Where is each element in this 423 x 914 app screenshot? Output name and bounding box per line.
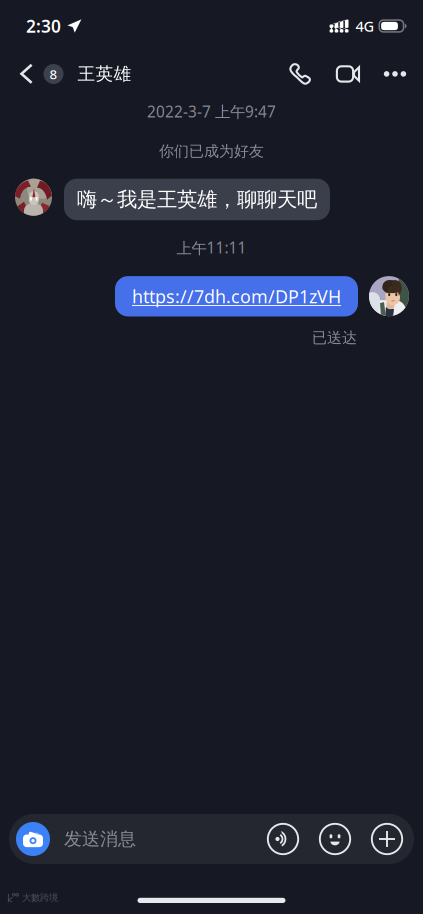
staticText: 王英雄: [77, 63, 131, 85]
staticText: 你们已成为好友: [159, 142, 264, 161]
button[interactable]: Camera: [16, 822, 50, 856]
button[interactable]: Voice call: [282, 52, 318, 96]
staticText: 大數跨境: [22, 892, 58, 903]
button[interactable]: More options: [371, 823, 403, 855]
staticText: 嗨～我是王英雄，聊聊天吧: [77, 187, 317, 212]
staticText: https://7dh.com/DP1zVH: [132, 284, 341, 308]
button[interactable]: Voice message: [267, 823, 299, 855]
staticText: 4G: [355, 16, 374, 36]
staticText: 8: [49, 65, 57, 83]
staticText: 2:30: [26, 14, 61, 37]
button[interactable]: Video call: [330, 52, 366, 96]
button[interactable]: Emoji: [319, 823, 351, 855]
staticText: 发送消息: [64, 828, 136, 850]
button[interactable]: 8: [0, 52, 63, 96]
button[interactable]: More: [378, 52, 412, 96]
staticText: 2022-3-7 上午9:47: [147, 101, 276, 122]
staticText: 上午11:11: [176, 237, 246, 258]
staticText: 已送达: [312, 328, 357, 347]
